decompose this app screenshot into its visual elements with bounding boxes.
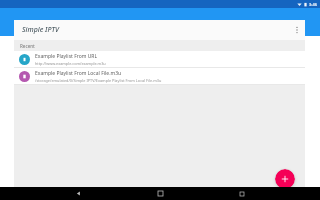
staticText: http://www.example.com/example.m3u: [35, 61, 106, 66]
staticText: Example Playlist From URL: [35, 53, 98, 60]
button[interactable]: Back: [72, 187, 85, 200]
staticText: Example Playlist From Local File.m3u: [35, 70, 122, 77]
button[interactable]: Home: [154, 187, 167, 200]
staticText: Recent: [20, 43, 35, 49]
staticText: Simple IPTV: [22, 25, 60, 35]
button[interactable]: Example Playlist From URL: [14, 51, 305, 67]
button[interactable]: Example Playlist From Local File.m3u: [14, 68, 305, 84]
button[interactable]: Recent apps: [235, 187, 248, 200]
staticText: 3:46: [309, 2, 317, 7]
button[interactable]: Add playlist: [275, 169, 295, 189]
button[interactable]: More options: [289, 22, 305, 38]
staticText: /storage/emulated/0/Simple IPTV/Example …: [35, 78, 162, 83]
